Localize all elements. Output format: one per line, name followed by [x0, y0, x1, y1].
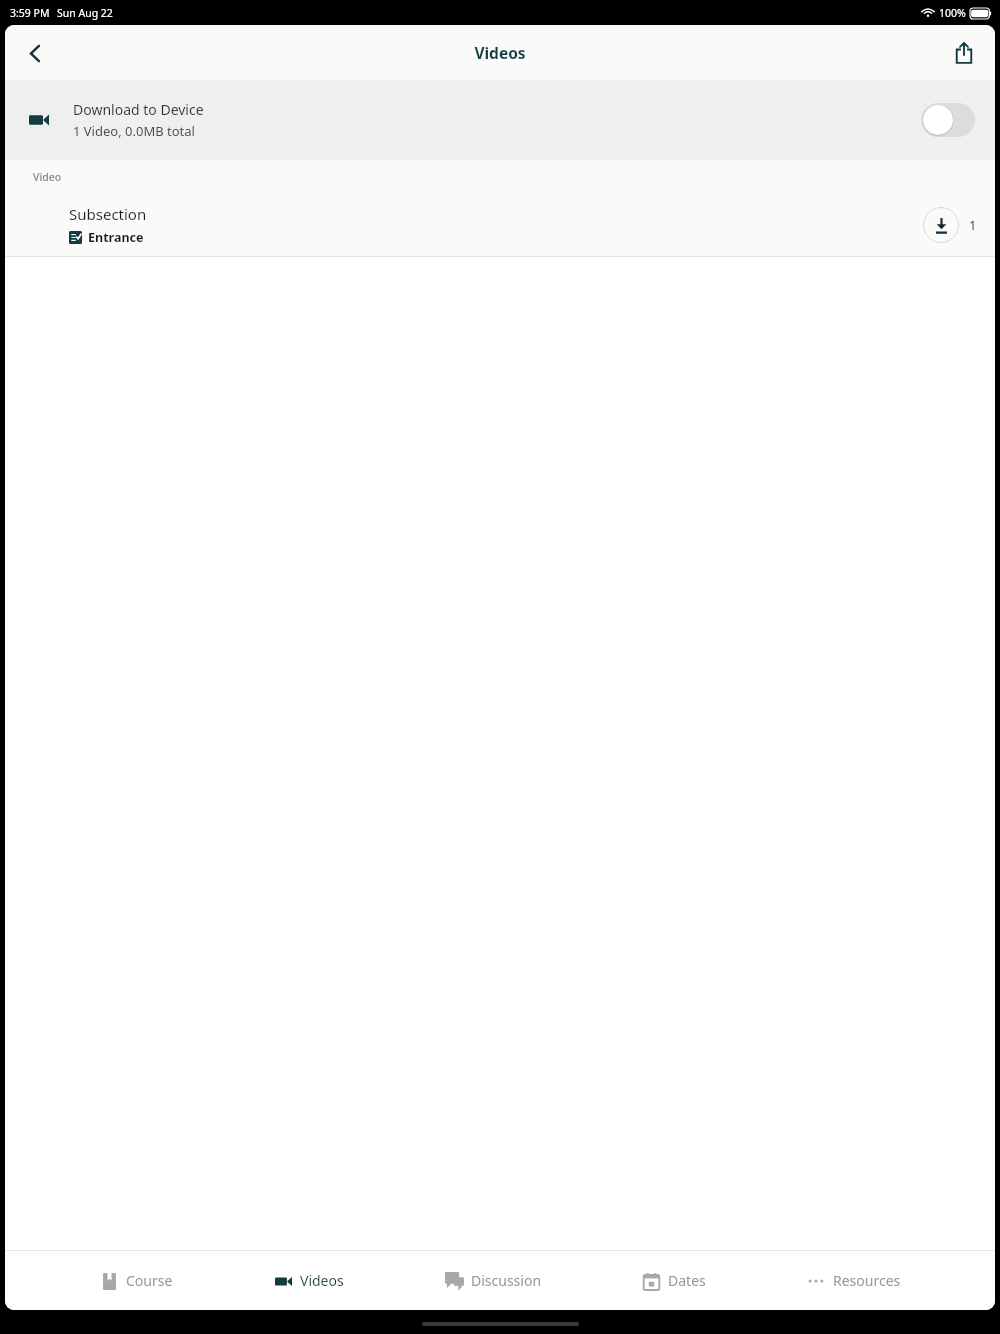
button[interactable]: Resources — [800, 1251, 907, 1310]
staticText: 100% — [939, 6, 966, 20]
button[interactable]: Download to Device toggle — [921, 103, 975, 137]
button[interactable]: Discussion — [438, 1251, 548, 1310]
staticText: Subsection — [69, 204, 147, 224]
button[interactable]: Share — [943, 32, 985, 74]
button[interactable]: Course — [93, 1251, 179, 1310]
staticText: Discussion — [471, 1271, 542, 1290]
button[interactable]: Back — [13, 31, 57, 75]
staticText: Sun Aug 22 — [57, 6, 113, 20]
staticText: Resources — [833, 1271, 901, 1290]
staticText: Dates — [668, 1271, 706, 1290]
staticText: 1 Video, 0.0MB total — [73, 122, 195, 140]
button[interactable]: Subsection — [5, 194, 995, 256]
staticText: 1 — [969, 216, 977, 234]
staticText: Video — [33, 170, 62, 184]
button[interactable]: Videos — [267, 1251, 350, 1310]
staticText: Videos — [300, 1271, 344, 1290]
staticText: Download to Device — [73, 100, 204, 119]
button[interactable]: Download to Device — [5, 80, 995, 160]
staticText: Course — [126, 1271, 173, 1290]
staticText: 3:59 PM — [10, 6, 50, 20]
button[interactable]: Download — [923, 207, 959, 243]
staticText: Videos — [474, 42, 526, 63]
staticText: Entrance — [88, 229, 144, 246]
button[interactable]: Dates — [635, 1251, 712, 1310]
